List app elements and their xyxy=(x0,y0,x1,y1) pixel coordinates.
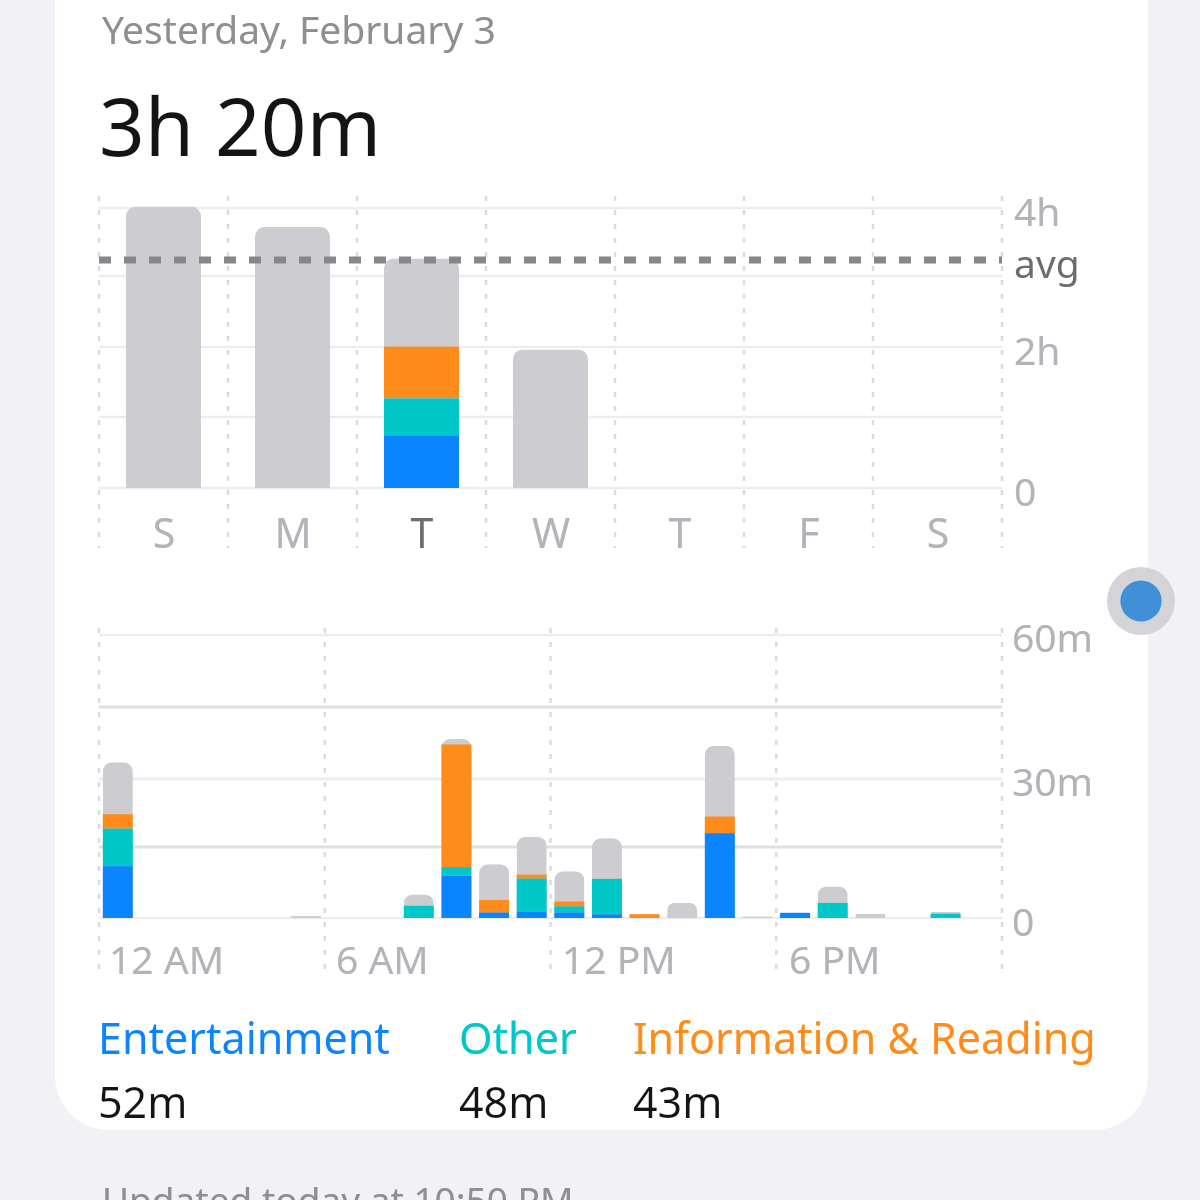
staticText: F xyxy=(764,504,854,560)
staticText: Updated today at 10:50 PM xyxy=(102,1174,574,1200)
staticText: 48m xyxy=(459,1072,549,1131)
staticText: 2h xyxy=(1014,323,1061,376)
staticText: W xyxy=(506,504,596,560)
button[interactable]: Information & Reading xyxy=(633,1008,1096,1131)
staticText: 4h xyxy=(1014,184,1061,237)
button[interactable]: Entertainment xyxy=(98,1008,390,1131)
staticText: S xyxy=(119,504,209,560)
staticText: 60m xyxy=(1012,610,1094,663)
staticText: Other xyxy=(459,1008,577,1067)
button[interactable] xyxy=(55,0,1148,1130)
staticText: T xyxy=(635,504,725,560)
staticText: 43m xyxy=(633,1072,723,1131)
staticText: avg xyxy=(1014,236,1080,289)
staticText: 0 xyxy=(1012,894,1035,947)
staticText: Yesterday, February 3 xyxy=(102,2,496,55)
staticText: M xyxy=(248,504,338,560)
staticText: 3h 20m xyxy=(99,70,382,179)
staticText: 30m xyxy=(1012,754,1094,807)
staticText: 12 AM xyxy=(109,932,225,985)
staticText: 0 xyxy=(1014,464,1037,517)
staticText: Information & Reading xyxy=(633,1008,1096,1067)
staticText: 6 AM xyxy=(336,932,429,985)
button[interactable]: Other xyxy=(459,1008,577,1131)
staticText: 12 PM xyxy=(562,932,676,985)
staticText: T xyxy=(377,504,467,560)
staticText: 52m xyxy=(98,1072,188,1131)
staticText: Entertainment xyxy=(98,1008,390,1067)
staticText: S xyxy=(893,504,983,560)
staticText: 6 PM xyxy=(789,932,881,985)
button[interactable]: Scrub chart xyxy=(1107,567,1175,635)
